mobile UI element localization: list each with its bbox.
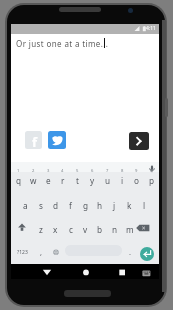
staticText: Or just one at a time... — [16, 38, 109, 49]
staticText: 6 — [91, 168, 94, 174]
button[interactable]: m — [122, 217, 137, 241]
staticText: 3 — [47, 168, 50, 174]
button[interactable]: t — [70, 168, 85, 192]
button[interactable] — [129, 132, 149, 150]
button[interactable]: x — [48, 217, 63, 241]
staticText: 9 — [135, 168, 138, 174]
button[interactable]: u — [100, 168, 115, 192]
staticText: j — [113, 200, 116, 211]
button[interactable]: d — [48, 193, 63, 217]
button[interactable] — [71, 264, 101, 278]
staticText: 7 — [106, 168, 109, 174]
button[interactable]: k — [122, 193, 137, 217]
button[interactable]: f — [25, 131, 42, 149]
button[interactable]: g — [78, 193, 93, 217]
button[interactable]: p — [144, 168, 159, 192]
staticText: u — [105, 175, 111, 186]
staticText: 2 — [32, 168, 35, 174]
button[interactable] — [50, 240, 63, 264]
staticText: n — [112, 224, 118, 235]
button[interactable]: y — [85, 168, 100, 192]
button[interactable]: i — [115, 168, 130, 192]
staticText: 4 — [61, 168, 64, 174]
staticText: l — [143, 200, 146, 211]
staticText: p — [149, 175, 155, 186]
staticText: f — [69, 200, 72, 211]
button[interactable] — [108, 264, 138, 278]
button[interactable]: . — [125, 240, 135, 264]
staticText: y — [90, 175, 95, 186]
staticText: c — [69, 224, 73, 235]
staticText: a — [23, 200, 28, 211]
staticText: 4:11 — [146, 25, 156, 32]
button[interactable]: , — [34, 240, 47, 264]
button[interactable]: r — [55, 168, 70, 192]
staticText: h — [97, 200, 103, 211]
button[interactable]: c — [63, 217, 78, 241]
staticText: b — [97, 224, 103, 235]
button[interactable]: e — [41, 168, 56, 192]
staticText: r — [61, 175, 65, 186]
button[interactable] — [32, 264, 62, 278]
button[interactable]: f — [63, 193, 78, 217]
staticText: x — [53, 224, 58, 235]
staticText: d — [53, 200, 59, 211]
staticText: t — [76, 175, 79, 186]
staticText: m — [126, 224, 134, 235]
staticText: ?123 — [17, 249, 28, 256]
staticText: z — [39, 224, 43, 235]
staticText: 5 — [76, 168, 79, 174]
staticText: . — [129, 247, 131, 257]
staticText: q — [16, 175, 22, 186]
button[interactable]: s — [33, 193, 48, 217]
button[interactable]: h — [92, 193, 107, 217]
button[interactable] — [11, 217, 33, 241]
staticText: 0 — [150, 168, 153, 174]
button[interactable]: l — [137, 193, 152, 217]
button[interactable]: a — [18, 193, 33, 217]
button[interactable] — [140, 247, 154, 261]
staticText: k — [127, 200, 132, 211]
button[interactable]: b — [92, 217, 107, 241]
button[interactable]: q — [11, 168, 26, 192]
button[interactable] — [137, 217, 159, 241]
staticText: o — [134, 175, 139, 186]
button[interactable]: v — [78, 217, 93, 241]
staticText: f — [32, 133, 38, 149]
staticText: w — [30, 175, 37, 186]
staticText: , — [40, 247, 42, 257]
button[interactable]: o — [129, 168, 144, 192]
button[interactable]: n — [107, 217, 122, 241]
staticText: i — [121, 175, 124, 186]
staticText: v — [83, 224, 88, 235]
button[interactable] — [48, 131, 66, 149]
staticText: s — [39, 200, 43, 211]
button[interactable]: ?123 — [10, 240, 35, 264]
button[interactable]: w — [26, 168, 41, 192]
button[interactable]: z — [33, 217, 48, 241]
staticText: 8 — [121, 168, 124, 174]
button[interactable]: j — [107, 193, 122, 217]
staticText: g — [83, 200, 89, 211]
staticText: e — [46, 175, 51, 186]
staticText: 1 — [17, 168, 20, 174]
